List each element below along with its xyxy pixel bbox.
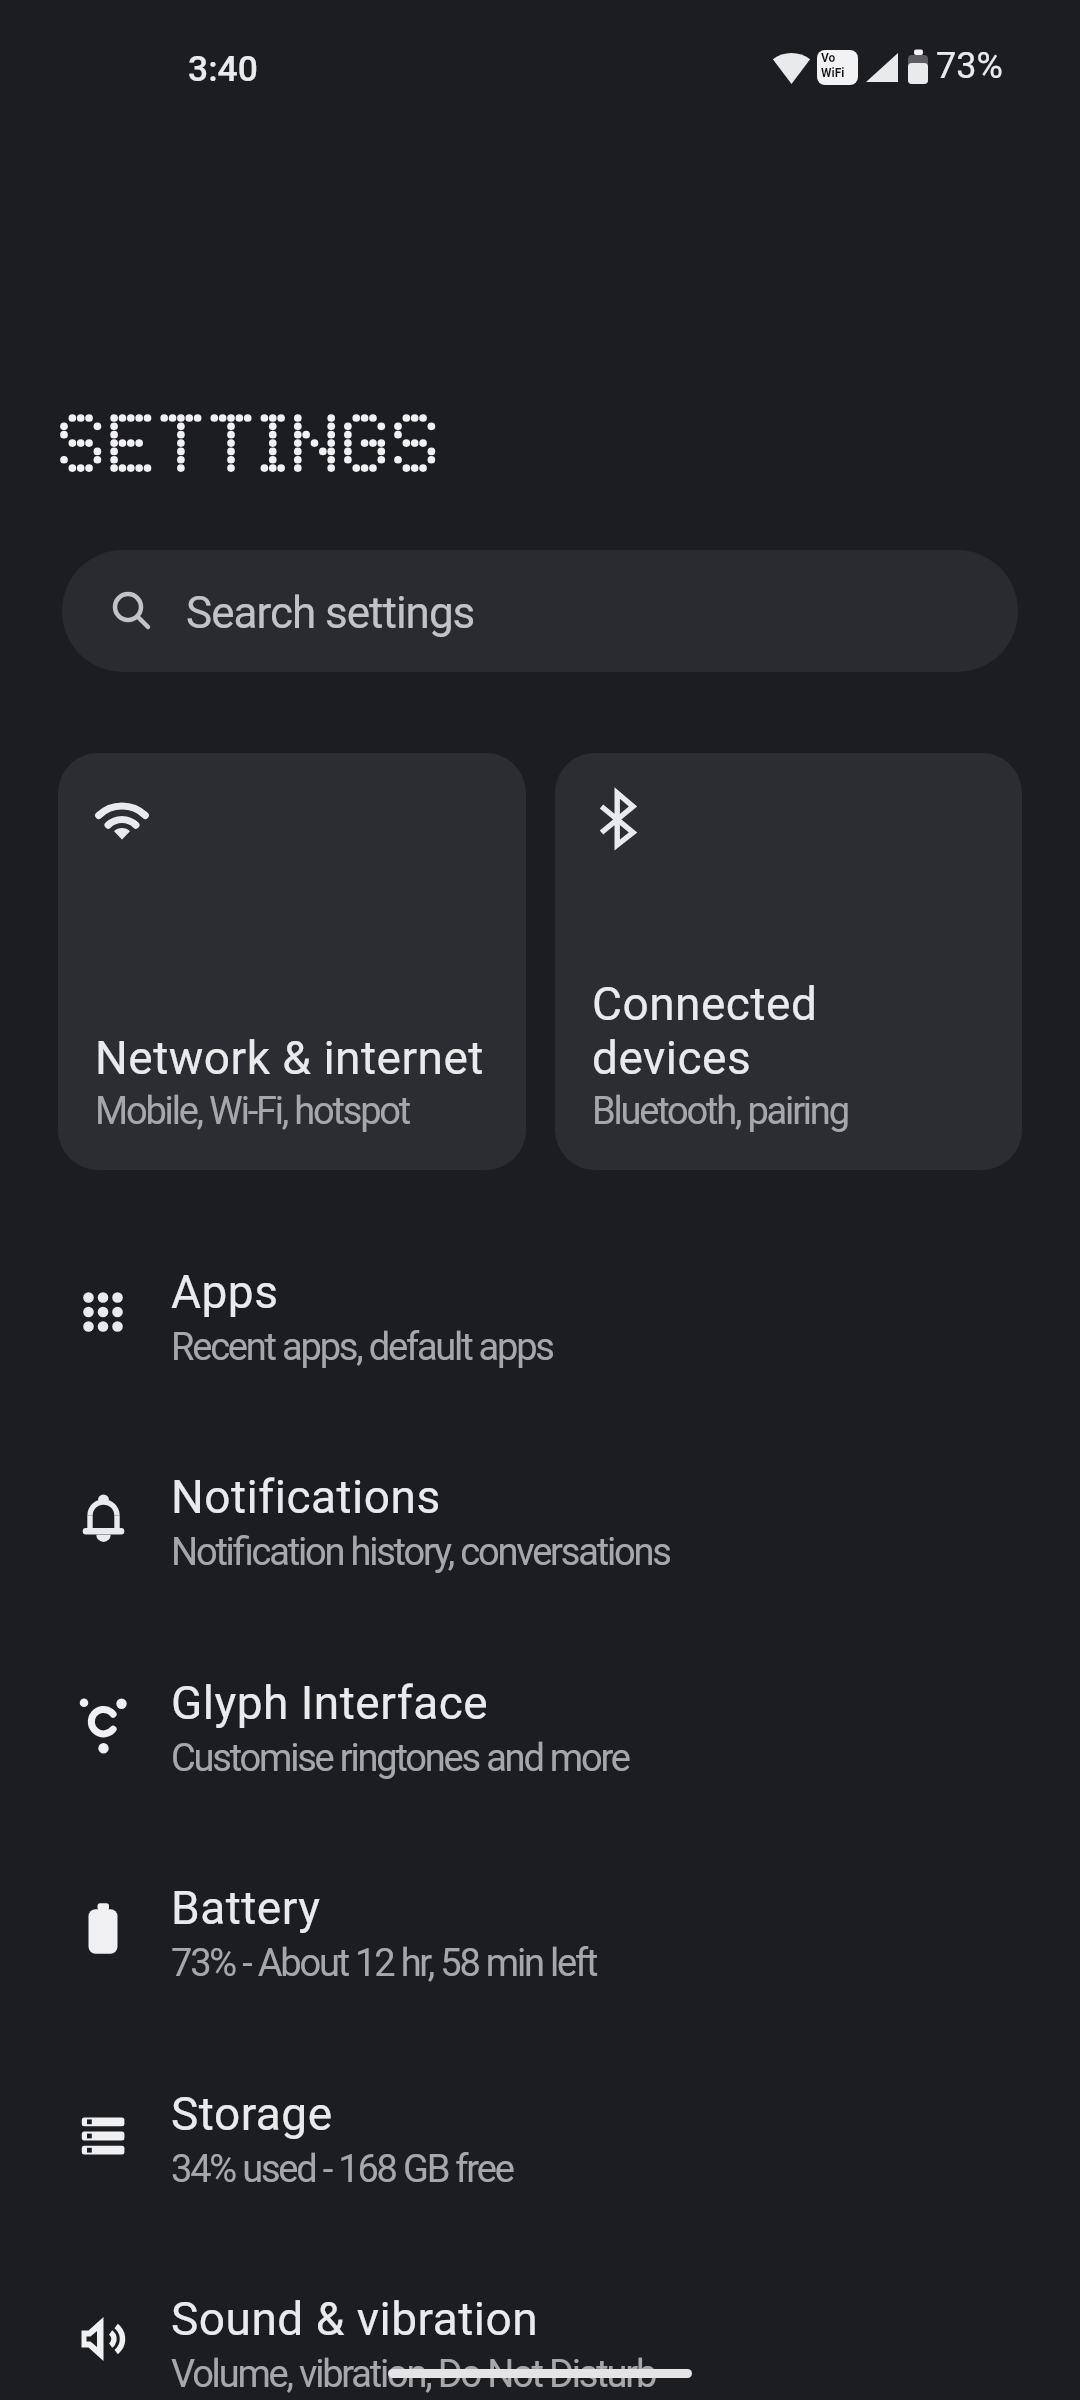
button[interactable]: Storage bbox=[0, 2049, 1080, 2239]
button[interactable]: Battery bbox=[0, 1843, 1080, 2033]
staticText: Search settings bbox=[186, 587, 475, 639]
staticText: 73% - About 12 hr, 58 min left bbox=[171, 1941, 597, 1986]
staticText: 3:40 bbox=[188, 48, 258, 90]
button[interactable]: Search settings bbox=[62, 550, 1018, 672]
staticText: Storage bbox=[171, 2087, 333, 2141]
button[interactable]: Connected devices bbox=[555, 753, 1022, 1170]
staticText: Notification history, conversations bbox=[171, 1530, 670, 1575]
button[interactable]: Apps bbox=[0, 1227, 1080, 1417]
staticText: Volume, vibration, Do Not Disturb bbox=[171, 2352, 656, 2397]
staticText: 34% used - 168 GB free bbox=[171, 2147, 513, 2192]
staticText: Network & internet bbox=[95, 1031, 484, 1085]
staticText: Connected devices bbox=[592, 977, 818, 1085]
staticText: Mobile, Wi-Fi, hotspot bbox=[95, 1089, 410, 1134]
staticText: Notifications bbox=[171, 1470, 441, 1524]
staticText: Sound & vibration bbox=[171, 2292, 539, 2346]
staticText: Glyph Interface bbox=[171, 1676, 489, 1730]
staticText: Apps bbox=[171, 1265, 279, 1319]
staticText: Vo WiFi bbox=[821, 51, 845, 80]
staticText: Recent apps, default apps bbox=[171, 1325, 553, 1370]
button[interactable]: Notifications bbox=[0, 1432, 1080, 1622]
button[interactable]: Glyph Interface bbox=[0, 1638, 1080, 1828]
button[interactable]: Sound & vibration bbox=[0, 2254, 1080, 2400]
staticText: Customise ringtones and more bbox=[171, 1736, 629, 1781]
button[interactable]: Network & internet bbox=[58, 753, 526, 1170]
staticText: Battery bbox=[171, 1881, 321, 1935]
staticText: Bluetooth, pairing bbox=[592, 1089, 848, 1134]
staticText: 73% bbox=[936, 45, 1003, 87]
